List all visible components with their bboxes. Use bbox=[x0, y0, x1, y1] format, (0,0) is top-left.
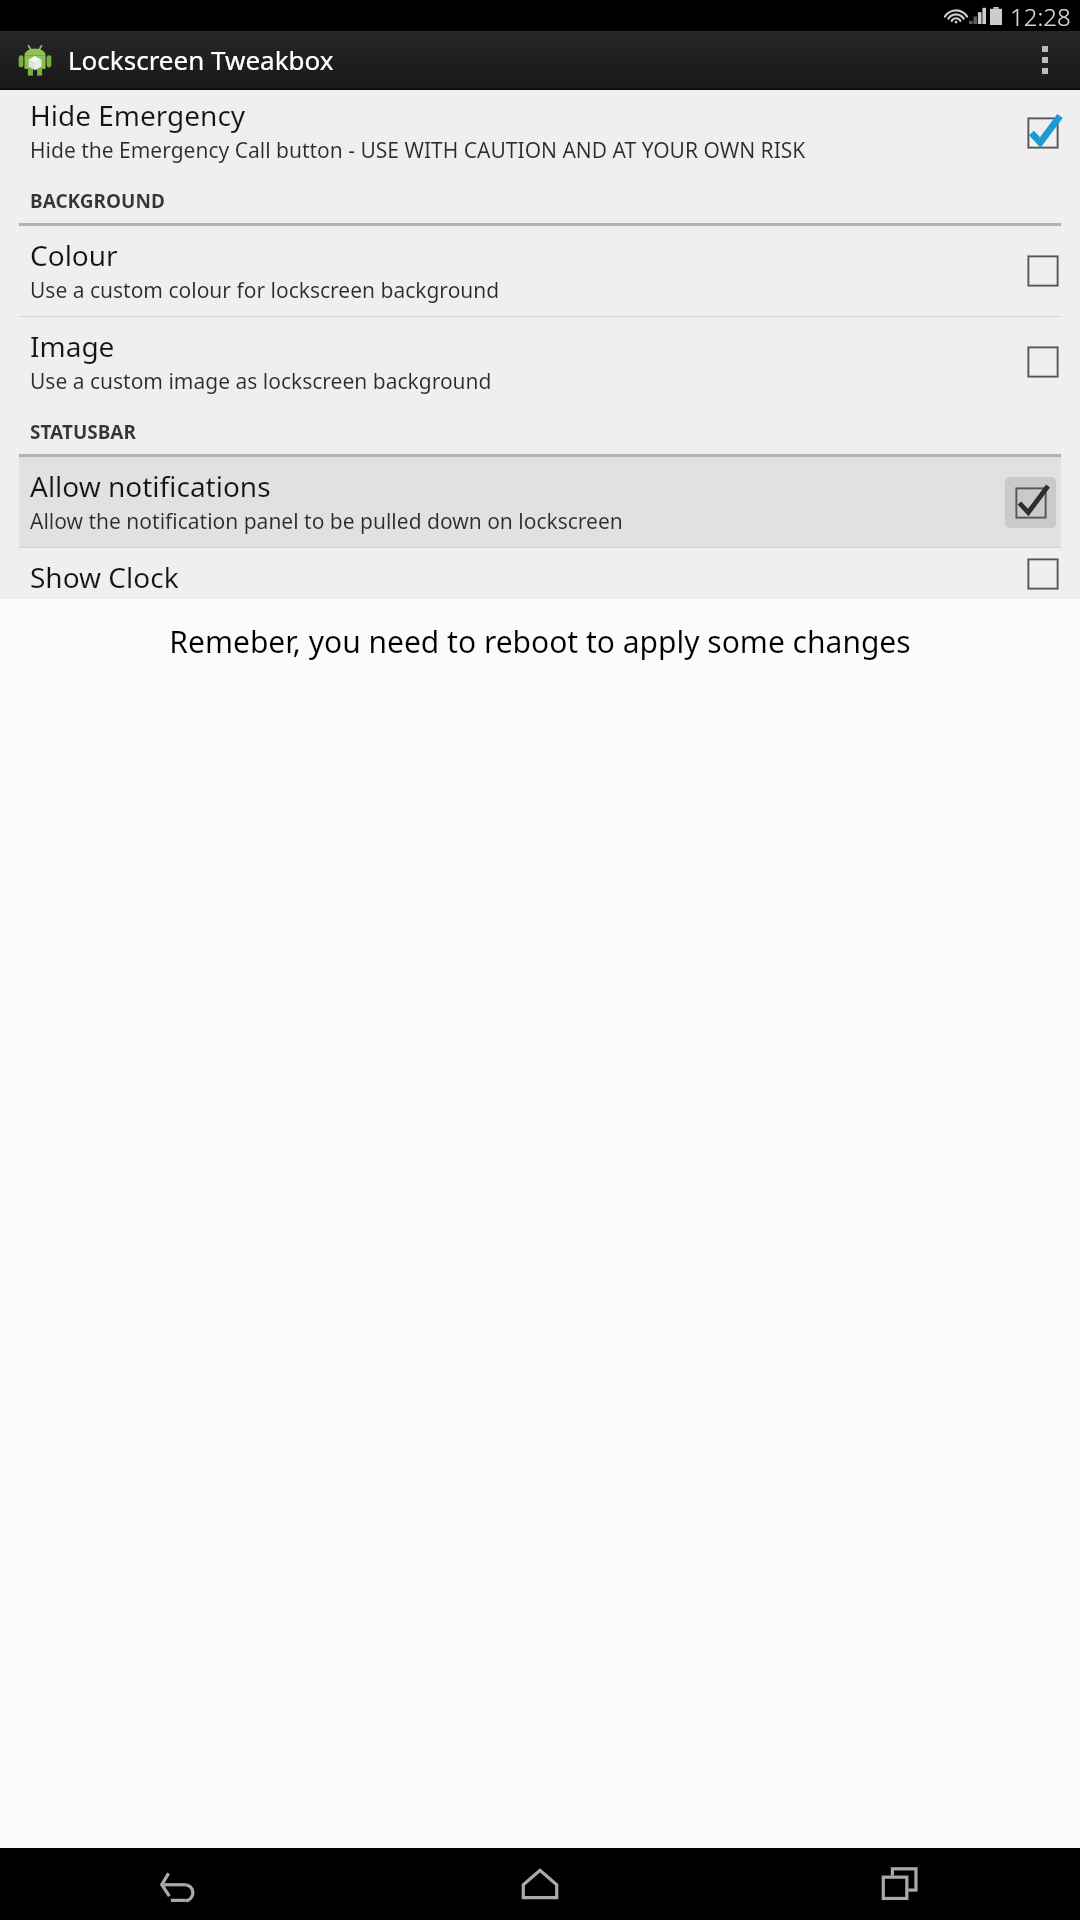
button[interactable]: Back bbox=[0, 1848, 360, 1920]
staticText: Hide the Emergency Call button - USE WIT… bbox=[30, 136, 806, 165]
staticText: Hide Emergency bbox=[30, 96, 246, 134]
staticText: Allow notifications bbox=[30, 467, 271, 505]
staticText: Use a custom image as lockscreen backgro… bbox=[30, 367, 492, 396]
staticText: Remeber, you need to reboot to apply som… bbox=[169, 621, 911, 662]
staticText: Lockscreen Tweakbox bbox=[68, 42, 334, 77]
button[interactable]: More options bbox=[1010, 31, 1080, 88]
button[interactable]: Hide Emergency bbox=[0, 90, 1080, 176]
button[interactable]: Allow notifications bbox=[19, 457, 1061, 547]
button[interactable]: Recent apps bbox=[720, 1848, 1080, 1920]
staticText: Allow the notification panel to be pulle… bbox=[30, 507, 623, 536]
staticText: Use a custom colour for lockscreen backg… bbox=[30, 276, 500, 305]
staticText: Show Clock bbox=[30, 558, 179, 588]
button[interactable]: Show Clock bbox=[0, 548, 1080, 599]
staticText: Colour bbox=[30, 236, 118, 274]
staticText: Image bbox=[30, 327, 115, 365]
button[interactable]: Home bbox=[360, 1848, 720, 1920]
staticText: STATUSBAR bbox=[30, 419, 136, 445]
staticText: 12:28 bbox=[1010, 0, 1071, 31]
button[interactable]: Image bbox=[0, 317, 1080, 407]
staticText: BACKGROUND bbox=[30, 188, 165, 214]
button[interactable]: Colour bbox=[0, 226, 1080, 316]
